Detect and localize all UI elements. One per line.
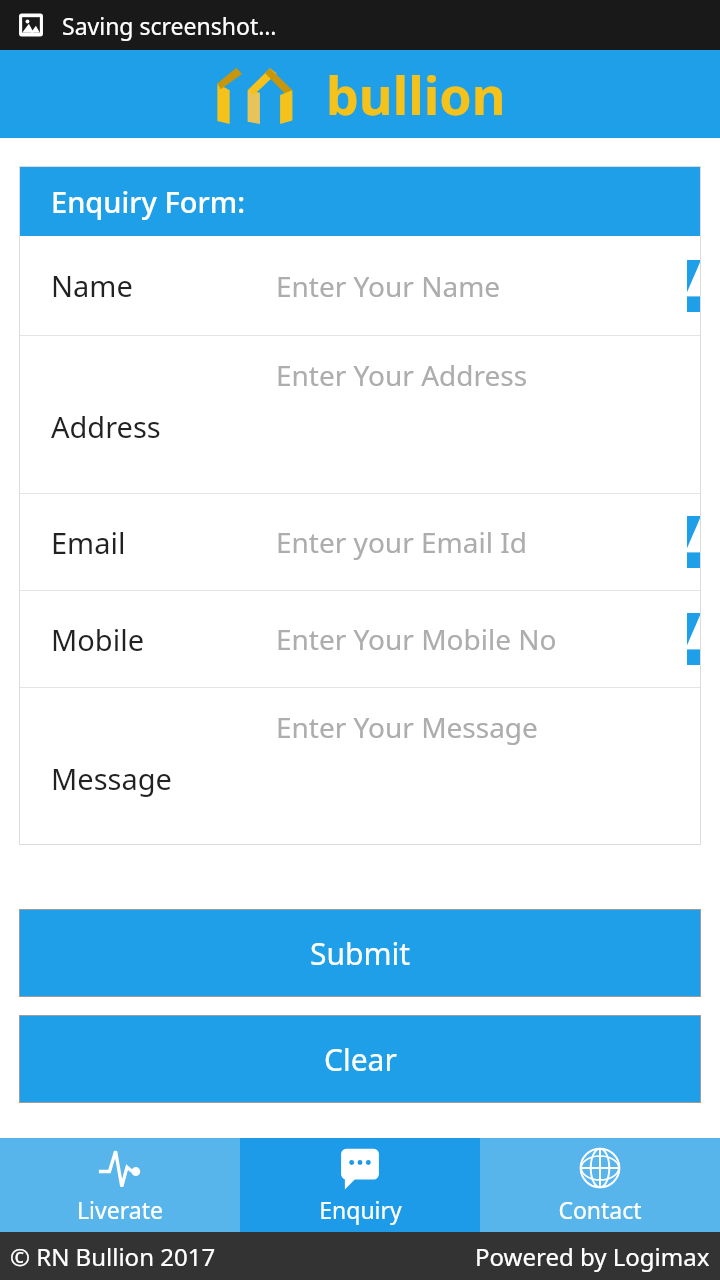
staticText: bullion — [326, 59, 506, 130]
button[interactable]: Clear — [19, 1015, 701, 1103]
staticText: Enter Your Message — [276, 708, 538, 746]
staticText: Submit — [310, 933, 411, 974]
button[interactable]: Message — [19, 688, 701, 845]
staticText: Mobile — [51, 620, 145, 659]
staticText: Enter your Email Id — [276, 523, 527, 561]
staticText: Enter Your Address — [276, 356, 528, 394]
button[interactable]: Submit — [19, 909, 701, 997]
staticText: Liverate — [77, 1194, 163, 1225]
staticText: Powered by Logimax — [475, 1240, 710, 1273]
staticText: Clear — [324, 1039, 397, 1080]
staticText: Enquiry — [319, 1194, 402, 1225]
staticText: Saving screenshot… — [62, 10, 277, 41]
staticText: Message — [51, 759, 172, 798]
button[interactable]: Address — [19, 336, 701, 493]
staticText: Name — [51, 266, 133, 305]
staticText: © RN Bullion 2017 — [10, 1240, 216, 1273]
button[interactable]: Contact — [480, 1138, 720, 1232]
button[interactable]: Name — [19, 236, 701, 335]
button[interactable]: Liverate — [0, 1138, 240, 1232]
staticText: Enquiry Form: — [51, 182, 246, 221]
button[interactable]: Email — [19, 494, 701, 590]
button[interactable]: Mobile — [19, 591, 701, 687]
button[interactable]: Enquiry — [240, 1138, 480, 1232]
staticText: Enter Your Mobile No — [276, 620, 557, 658]
staticText: Contact — [558, 1194, 642, 1225]
staticText: Enter Your Name — [276, 267, 501, 305]
staticText: Address — [51, 407, 161, 446]
staticText: Email — [51, 523, 126, 562]
